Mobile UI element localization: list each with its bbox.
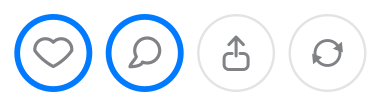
button[interactable]: Refresh bbox=[288, 14, 366, 92]
button[interactable]: Share bbox=[197, 14, 275, 92]
button[interactable]: Like bbox=[14, 14, 92, 92]
button[interactable]: Comment bbox=[106, 14, 184, 92]
